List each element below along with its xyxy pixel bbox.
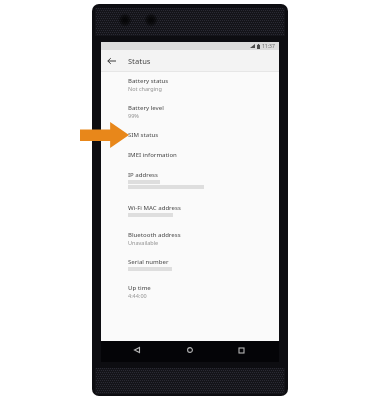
- staticText: Bluetooth address: [128, 231, 181, 239]
- staticText: IP address: [128, 171, 158, 179]
- staticText: 4:44:00: [128, 292, 147, 299]
- other: Pointer arrow: [80, 122, 129, 148]
- button[interactable]: Bluetooth address: [101, 231, 279, 246]
- button[interactable]: Navigate up: [101, 51, 121, 71]
- staticText: Up time: [128, 284, 151, 292]
- staticText: Battery status: [128, 77, 169, 85]
- staticText: 99%: [128, 112, 139, 119]
- button[interactable]: Battery level: [101, 104, 279, 119]
- staticText: SIM status: [128, 131, 159, 139]
- button[interactable]: IP address: [101, 171, 279, 189]
- button[interactable]: Up time: [101, 284, 279, 299]
- button[interactable]: Serial number: [101, 258, 279, 271]
- button[interactable]: Wi-Fi MAC address: [101, 204, 279, 217]
- staticText: Serial number: [128, 258, 169, 266]
- staticText: IMEI information: [128, 151, 177, 159]
- staticText: Wi-Fi MAC address: [128, 204, 181, 212]
- button[interactable]: Battery status: [101, 77, 279, 92]
- staticText: 11:37: [262, 43, 275, 50]
- staticText: Status: [128, 56, 151, 66]
- button[interactable]: SIM status: [101, 131, 279, 139]
- button[interactable]: IMEI information: [101, 151, 279, 159]
- button[interactable]: Back: [130, 343, 144, 357]
- staticText: Not charging: [128, 85, 162, 92]
- staticText: Battery level: [128, 104, 164, 112]
- button[interactable]: Home: [183, 343, 197, 357]
- staticText: Unavailable: [128, 239, 159, 246]
- button[interactable]: Recent apps: [234, 343, 248, 357]
